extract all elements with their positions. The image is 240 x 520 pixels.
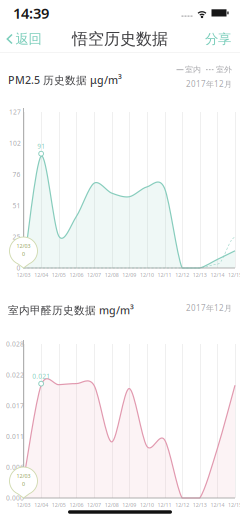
staticText: 0.011	[6, 432, 24, 441]
staticText: 12/14	[210, 271, 224, 279]
staticText: 室内甲醛历史数据 mg/m³	[8, 303, 134, 317]
staticText: 12/10	[140, 501, 154, 509]
staticText: 12/10	[140, 271, 154, 279]
staticText: 0.021	[32, 372, 50, 381]
staticText: 12/12	[175, 501, 189, 509]
staticText: 12/07	[87, 271, 101, 279]
staticText: 12/05	[52, 271, 66, 279]
staticText: 91	[37, 142, 45, 151]
staticText: 12/03	[16, 242, 30, 249]
staticText: 12/14	[210, 501, 224, 509]
staticText: 12/15	[228, 271, 240, 279]
staticText: 悟空历史数据	[72, 29, 168, 49]
staticText: PM2.5 历史数据 μg/m³	[8, 73, 122, 87]
staticText: 0.006	[6, 463, 24, 472]
staticText: 12/03	[16, 501, 30, 509]
staticText: 分享	[205, 31, 231, 47]
button[interactable]: 分享	[196, 26, 240, 52]
staticText: 102	[9, 139, 21, 148]
staticText: 127	[9, 108, 21, 116]
staticText: 返回	[15, 31, 41, 47]
staticText: 12/13	[193, 271, 207, 279]
staticText: 12/08	[105, 271, 119, 279]
staticText: 0.028	[6, 340, 24, 348]
staticText: 室外	[216, 65, 232, 75]
staticText: 12/04	[34, 501, 48, 509]
staticText: 12/06	[69, 501, 83, 509]
staticText: 12/09	[122, 271, 136, 279]
staticText: 0	[22, 250, 25, 258]
staticText: 12/11	[157, 501, 171, 509]
staticText: 12/07	[87, 501, 101, 509]
staticText: 14:39	[13, 3, 49, 23]
staticText: 2017年12月	[186, 79, 232, 89]
staticText: 12/08	[105, 501, 119, 509]
staticText: 12/09	[122, 501, 136, 509]
staticText: 12/04	[34, 271, 48, 279]
staticText: 室内	[185, 65, 201, 75]
staticText: 76	[12, 170, 20, 179]
staticText: 25	[12, 232, 20, 241]
staticText: 12/11	[157, 271, 171, 279]
staticText: 2017年12月	[186, 303, 232, 313]
staticText: 12/13	[193, 501, 207, 509]
staticText: 0.017	[6, 401, 24, 410]
staticText: 12/06	[69, 271, 83, 279]
staticText: 12/12	[175, 271, 189, 279]
staticText: 12/03	[16, 271, 30, 279]
staticText: 12/05	[52, 501, 66, 509]
staticText: 0.000	[6, 494, 24, 502]
staticText: 12/03	[16, 472, 30, 479]
staticText: 0	[16, 264, 20, 272]
staticText: 0.022	[6, 370, 24, 379]
button[interactable]: 返回	[0, 26, 49, 52]
staticText: 51	[12, 201, 20, 210]
staticText: 0	[22, 480, 25, 488]
staticText: 12/15	[228, 501, 240, 509]
